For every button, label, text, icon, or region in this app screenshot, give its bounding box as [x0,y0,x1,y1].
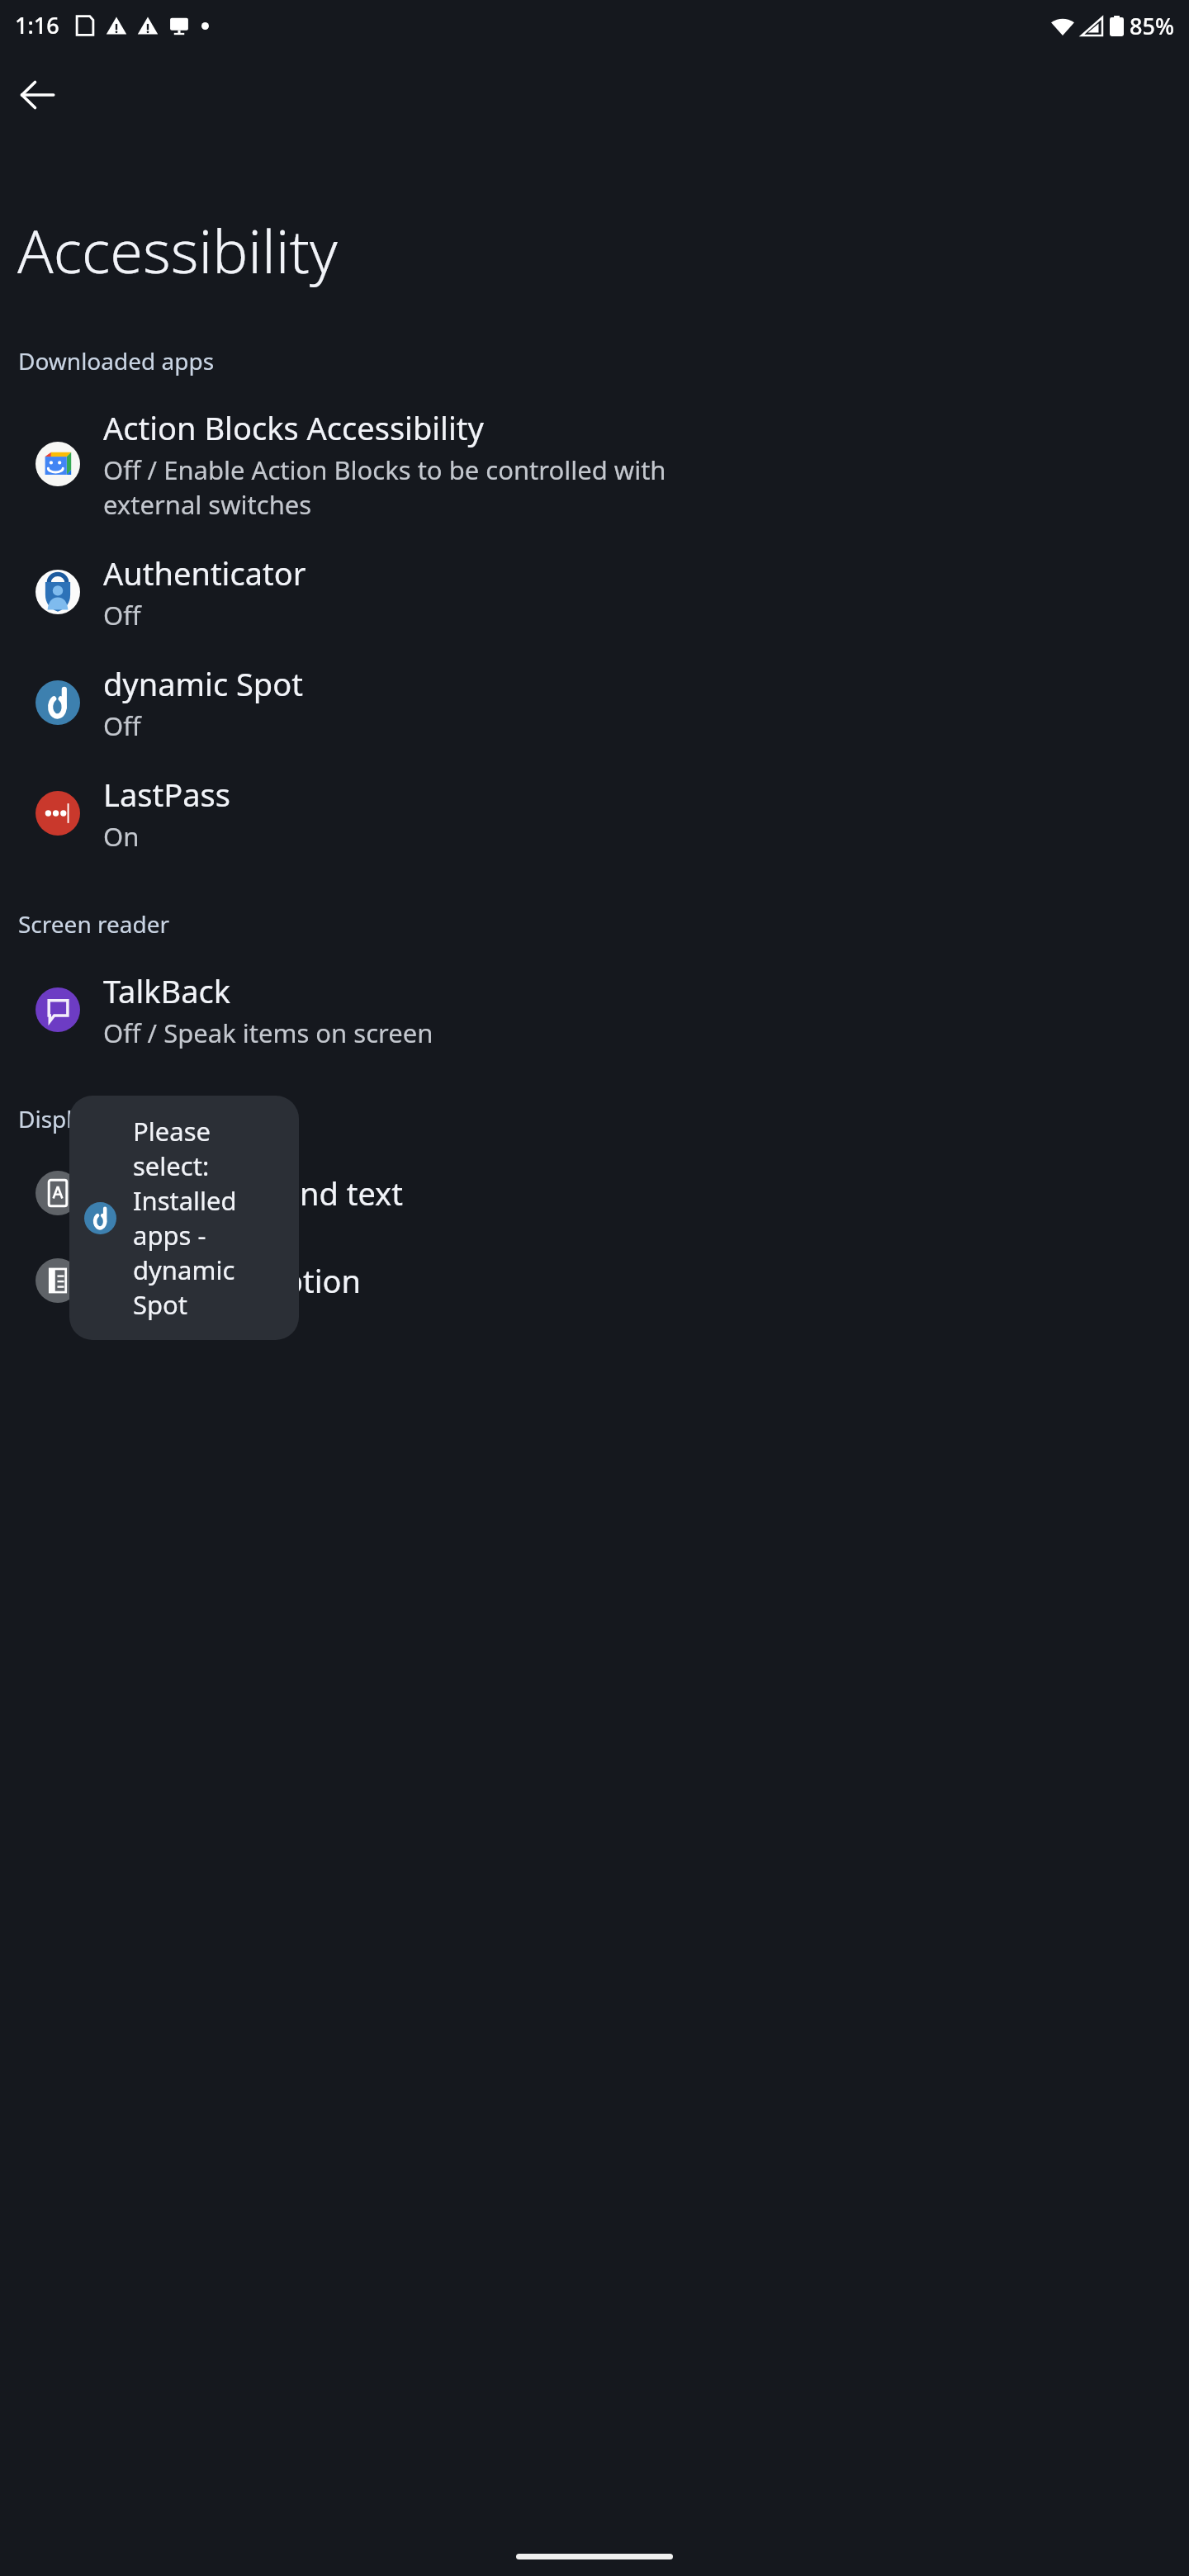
button[interactable]: Authenticator [0,537,1189,647]
staticText: Accessibility [17,210,338,291]
staticText: Color and motion [103,1259,361,1302]
staticText: Authenticator [103,552,306,594]
staticText: Screen reader [18,908,170,940]
staticText: LastPass [103,773,230,816]
staticText: Display size and text [103,1172,403,1215]
staticText: Display [18,1103,97,1134]
button[interactable]: TalkBack [0,954,1189,1065]
staticText: On [103,819,140,854]
staticText: Off [103,598,141,632]
staticText: Off / Speak items on screen [103,1016,433,1050]
staticText: 85% [1130,11,1174,41]
staticText: dynamic Spot [103,662,303,705]
button[interactable]: Display size and text [0,1149,1189,1237]
staticText: 1:16 [15,10,59,40]
staticText: Off [103,708,141,743]
button[interactable]: Back [12,69,63,121]
button[interactable]: LastPass [0,758,1189,869]
staticText: Off / Enable Action Blocks to be control… [103,452,666,522]
staticText: TalkBack [103,969,231,1012]
button[interactable]: dynamic Spot [0,647,1189,758]
staticText: Please select: Installed apps - dynamic … [133,1114,282,1322]
staticText: Action Blocks Accessibility [103,406,484,449]
button[interactable]: Action Blocks Accessibility [0,391,1189,537]
button[interactable]: Please select: Installed apps - dynamic … [69,1096,299,1340]
button[interactable]: Color and motion [0,1237,1189,1324]
staticText: Downloaded apps [18,345,215,376]
